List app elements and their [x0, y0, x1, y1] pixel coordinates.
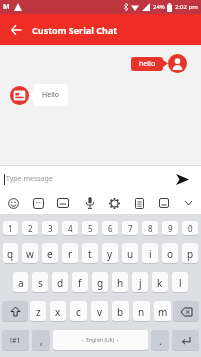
- staticText: e: [47, 247, 53, 261]
- staticText: q: [7, 247, 14, 261]
- staticText: M: [3, 2, 10, 12]
- staticText: p: [187, 247, 194, 261]
- staticText: f: [78, 276, 82, 290]
- button[interactable]: 8: [142, 221, 158, 236]
- button[interactable]: 7: [122, 221, 138, 236]
- button[interactable]: g: [92, 272, 108, 293]
- button[interactable]: v: [91, 301, 108, 322]
- staticText: Custom Serial Chat: [32, 24, 118, 36]
- staticText: 4: [68, 223, 73, 234]
- button[interactable]: b: [112, 301, 129, 322]
- staticText: c: [76, 305, 81, 319]
- staticText: w: [26, 247, 34, 261]
- button[interactable]: c: [70, 301, 87, 322]
- button[interactable]: j: [132, 272, 148, 293]
- button[interactable]: 1: [3, 221, 18, 236]
- button[interactable]: 5: [82, 221, 98, 236]
- button[interactable]: hello: [131, 57, 163, 71]
- staticText: !#1: [10, 336, 21, 346]
- staticText: .: [159, 334, 162, 348]
- staticText: g: [97, 276, 104, 290]
- button[interactable]: Type message: [4, 166, 189, 192]
- button[interactable]: z: [30, 301, 46, 322]
- button[interactable]: 3: [42, 221, 58, 236]
- staticText: j: [139, 276, 142, 290]
- button[interactable]: .: [151, 330, 169, 351]
- button[interactable]: 2: [22, 221, 38, 236]
- button[interactable]: !#1: [2, 330, 29, 351]
- button[interactable]: [178, 193, 198, 213]
- staticText: n: [138, 305, 145, 319]
- staticText: 7: [128, 223, 133, 234]
- button[interactable]: k: [152, 272, 168, 293]
- button[interactable]: u: [122, 243, 138, 264]
- button[interactable]: [3, 193, 23, 213]
- staticText: 24%: [153, 3, 165, 11]
- staticText: l: [179, 276, 182, 290]
- button[interactable]: h: [112, 272, 128, 293]
- button[interactable]: i: [142, 243, 158, 264]
- staticText: a: [18, 276, 24, 290]
- button[interactable]: [28, 193, 48, 213]
- staticText: v: [97, 305, 103, 319]
- button[interactable]: s: [32, 272, 48, 293]
- button[interactable]: p: [182, 243, 198, 264]
- staticText: k: [157, 276, 163, 290]
- button[interactable]: [7, 21, 25, 39]
- button[interactable]: 6: [102, 221, 118, 236]
- staticText: 9: [168, 223, 173, 234]
- button[interactable]: ,: [32, 330, 50, 351]
- button[interactable]: [173, 301, 199, 322]
- staticText: z: [36, 305, 41, 319]
- staticText: i: [149, 247, 152, 261]
- button[interactable]: l: [172, 272, 188, 293]
- button[interactable]: [104, 193, 124, 213]
- button[interactable]: 4: [62, 221, 78, 236]
- button[interactable]: w: [22, 243, 38, 264]
- staticText: y: [107, 247, 113, 261]
- staticText: h: [117, 276, 124, 290]
- staticText: 6: [108, 223, 113, 234]
- button[interactable]: [2, 301, 28, 322]
- button[interactable]: [172, 330, 199, 351]
- button[interactable]: 9: [162, 221, 178, 236]
- staticText: 3: [48, 223, 53, 234]
- button[interactable]: t: [82, 243, 98, 264]
- staticText: u: [127, 247, 134, 261]
- staticText: Type message: [6, 174, 53, 184]
- button[interactable]: ‹ English (UK) ›: [53, 330, 148, 351]
- staticText: Hello: [42, 90, 59, 100]
- staticText: 2: [28, 223, 33, 234]
- button[interactable]: d: [52, 272, 68, 293]
- button[interactable]: [154, 193, 174, 213]
- staticText: o: [167, 247, 174, 261]
- staticText: s: [38, 276, 43, 290]
- staticText: 1: [8, 223, 13, 234]
- button[interactable]: [129, 193, 149, 213]
- button[interactable]: m: [154, 301, 171, 322]
- staticText: 5: [88, 223, 93, 234]
- button[interactable]: e: [42, 243, 58, 264]
- staticText: t: [88, 247, 92, 261]
- button[interactable]: 0: [182, 221, 198, 236]
- button[interactable]: y: [102, 243, 118, 264]
- button[interactable]: Hello: [33, 84, 68, 106]
- button[interactable]: f: [72, 272, 88, 293]
- staticText: ‹ English (UK) ›: [82, 337, 119, 344]
- button[interactable]: [176, 174, 189, 185]
- button[interactable]: r: [62, 243, 78, 264]
- button[interactable]: o: [162, 243, 178, 264]
- staticText: r: [68, 247, 73, 261]
- button[interactable]: x: [50, 301, 66, 322]
- staticText: 8: [148, 223, 153, 234]
- staticText: 0: [188, 223, 193, 234]
- button[interactable]: q: [3, 243, 18, 264]
- button[interactable]: [80, 193, 100, 213]
- staticText: 2:02 pm: [175, 3, 198, 11]
- button[interactable]: [53, 193, 73, 213]
- button[interactable]: n: [133, 301, 150, 322]
- staticText: m: [158, 305, 168, 319]
- button[interactable]: a: [13, 272, 28, 293]
- staticText: x: [55, 305, 61, 319]
- staticText: d: [57, 276, 64, 290]
